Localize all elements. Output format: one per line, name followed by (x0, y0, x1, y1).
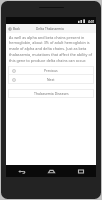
staticText: As well as alpha and beta chains present… (9, 35, 94, 63)
button[interactable]: Back (6, 165, 36, 177)
button[interactable]: Previous (8, 66, 94, 75)
staticText: Delta Thalassemia (36, 27, 64, 31)
staticText: Next (47, 77, 55, 82)
staticText: Back (13, 27, 20, 31)
button[interactable]: Recent apps (66, 165, 96, 177)
staticText: Previous (44, 68, 58, 73)
button[interactable]: Home (36, 165, 66, 177)
staticText: Thalassemia Diseases (34, 91, 69, 96)
staticText: 4:01 (88, 19, 95, 23)
button[interactable]: Next (8, 75, 94, 84)
button[interactable]: Back (6, 24, 22, 33)
button[interactable]: Thalassemia Diseases (8, 89, 94, 98)
